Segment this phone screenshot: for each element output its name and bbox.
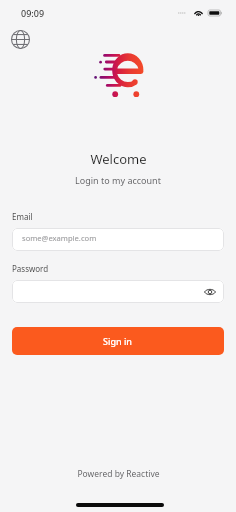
staticText: Login to my account bbox=[75, 174, 161, 186]
button[interactable]: Show password bbox=[12, 280, 224, 303]
staticText: some@example.com bbox=[22, 233, 97, 243]
staticText: Welcome bbox=[90, 150, 147, 168]
button[interactable]: some@example.com bbox=[12, 228, 224, 251]
staticText: 09:09 bbox=[21, 7, 45, 19]
staticText: Sign in bbox=[103, 335, 133, 347]
button[interactable]: Show password bbox=[201, 280, 224, 303]
staticText: Email bbox=[12, 211, 33, 222]
staticText: Powered by Reactive bbox=[77, 468, 160, 480]
button[interactable]: Change language bbox=[8, 28, 32, 51]
button[interactable]: Sign in bbox=[12, 327, 224, 355]
staticText: Password bbox=[12, 263, 49, 274]
